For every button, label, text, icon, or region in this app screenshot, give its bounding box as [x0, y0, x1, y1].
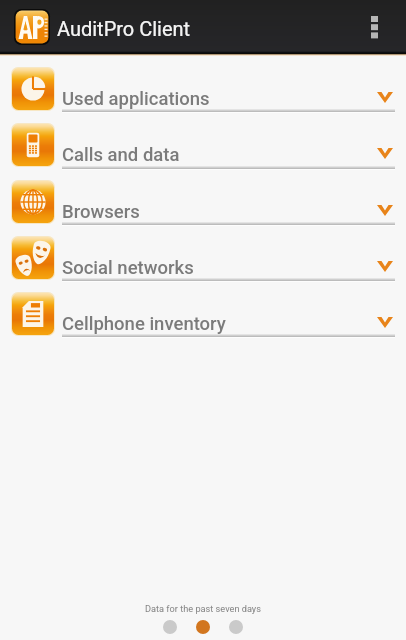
- button[interactable]: Social networks: [0, 224, 406, 280]
- staticText: Used applications: [62, 88, 210, 110]
- other: Expand Social networks: [377, 261, 393, 272]
- button[interactable]: Calls and data: [0, 111, 406, 167]
- button[interactable]: Page: [163, 620, 177, 634]
- staticText: AuditPro Client: [57, 17, 191, 40]
- staticText: Cellphone inventory: [62, 313, 226, 335]
- button[interactable]: More options: [356, 0, 406, 54]
- button[interactable]: Browsers: [0, 168, 406, 224]
- other: Expand Used applications: [377, 92, 393, 103]
- other: Expand Cellphone inventory: [377, 317, 393, 328]
- other: Expand Browsers: [377, 205, 393, 216]
- staticText: Calls and data: [62, 144, 180, 166]
- button[interactable]: Current page: [196, 620, 210, 634]
- button[interactable]: Page: [229, 620, 243, 634]
- staticText: Data for the past seven days: [145, 603, 261, 614]
- button[interactable]: Cellphone inventory: [0, 280, 406, 336]
- button[interactable]: Used applications: [0, 55, 406, 111]
- staticText: Social networks: [62, 257, 194, 279]
- staticText: Browsers: [62, 201, 140, 223]
- other: Expand Calls and data: [377, 148, 393, 159]
